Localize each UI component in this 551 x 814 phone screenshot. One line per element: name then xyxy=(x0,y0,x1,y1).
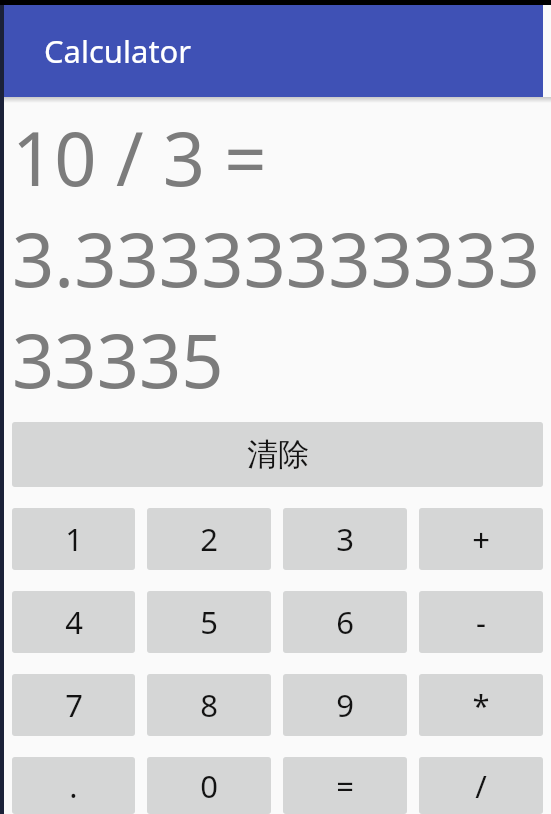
staticText: / xyxy=(475,765,487,807)
button[interactable]: - xyxy=(419,591,543,653)
button[interactable]: 6 xyxy=(283,591,407,653)
button[interactable]: 2 xyxy=(147,508,271,570)
button[interactable]: 3 xyxy=(283,508,407,570)
button[interactable]: 0 xyxy=(147,757,271,814)
button[interactable]: 8 xyxy=(147,674,271,736)
staticText: 33335 xyxy=(12,309,224,410)
staticText: 3 xyxy=(336,518,354,560)
button[interactable]: 4 xyxy=(12,591,135,653)
staticText: Calculator xyxy=(44,30,192,72)
button[interactable]: = xyxy=(283,757,407,814)
staticText: 清除 xyxy=(247,435,309,474)
staticText: 3.33333333333 xyxy=(12,208,540,309)
staticText: - xyxy=(476,601,486,643)
staticText: 8 xyxy=(200,684,218,726)
staticText: = xyxy=(336,765,354,807)
button[interactable]: * xyxy=(419,674,543,736)
staticText: * xyxy=(472,684,490,726)
button[interactable]: 7 xyxy=(12,674,135,736)
staticText: 0 xyxy=(200,765,218,807)
staticText: 1 xyxy=(65,518,83,560)
staticText: 5 xyxy=(200,601,218,643)
staticText: 10 / 3 = xyxy=(12,107,267,208)
staticText: 9 xyxy=(336,684,354,726)
button[interactable]: 1 xyxy=(12,508,135,570)
button[interactable]: 清除 xyxy=(12,422,543,487)
staticText: 2 xyxy=(200,518,218,560)
button[interactable]: / xyxy=(419,757,543,814)
button[interactable]: + xyxy=(419,508,543,570)
button[interactable]: . xyxy=(12,757,135,814)
staticText: . xyxy=(69,765,78,807)
button[interactable]: 9 xyxy=(283,674,407,736)
staticText: 4 xyxy=(65,601,83,643)
staticText: 7 xyxy=(65,684,83,726)
staticText: + xyxy=(472,518,490,560)
staticText: 6 xyxy=(336,601,354,643)
button[interactable]: 5 xyxy=(147,591,271,653)
